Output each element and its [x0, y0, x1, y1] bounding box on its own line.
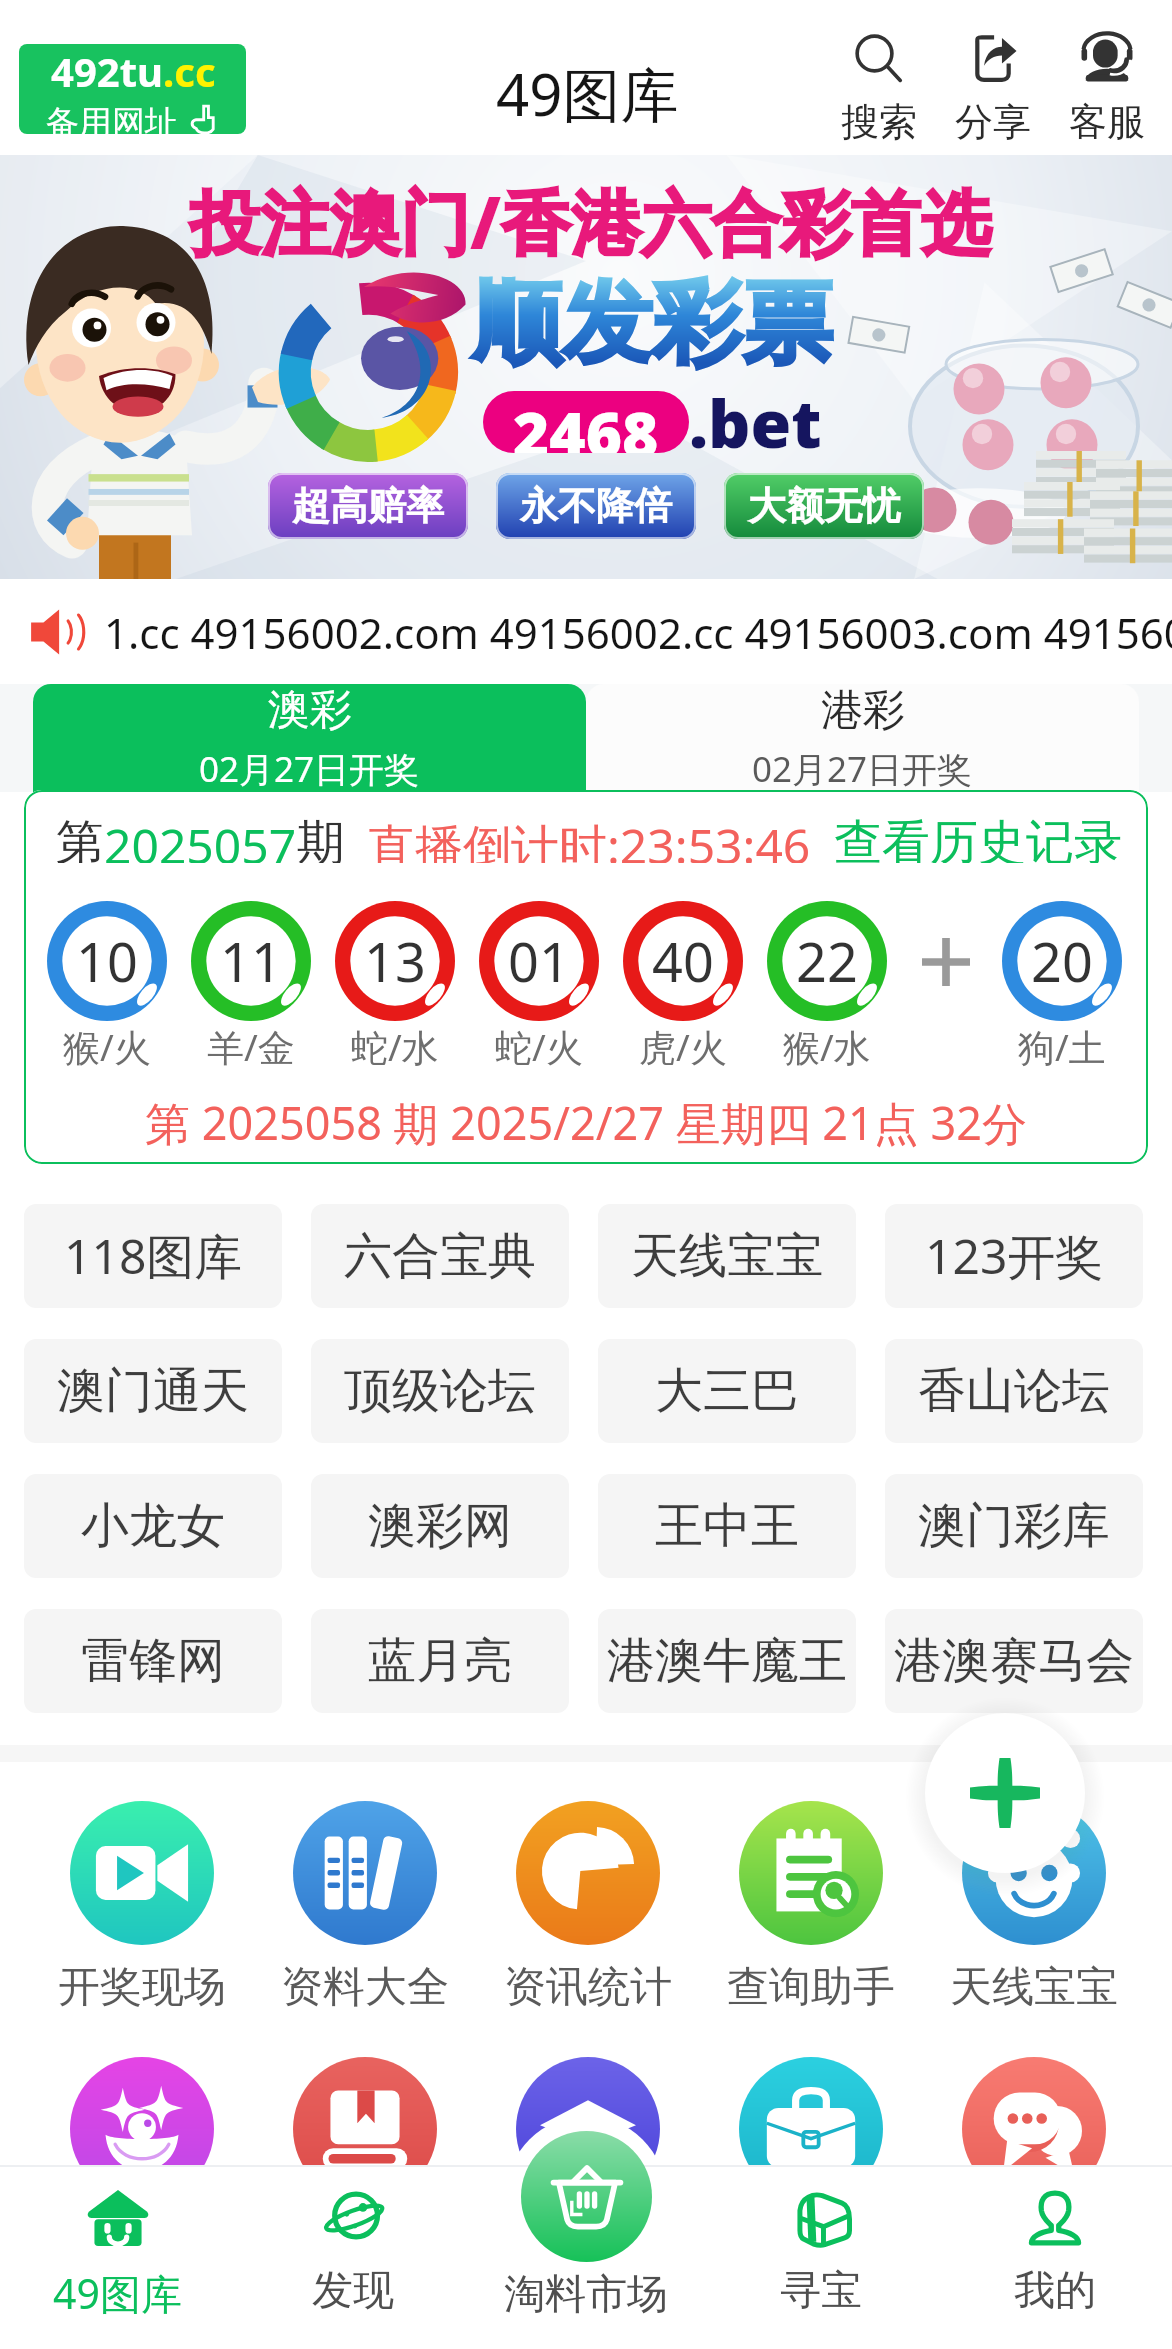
button[interactable]: 香山论坛 [885, 1339, 1143, 1443]
button[interactable]: 澳门彩库 [885, 1474, 1143, 1578]
staticText: 发现 [312, 2265, 394, 2317]
staticText: 澳彩网 [368, 1496, 512, 1556]
staticText: 123开奖 [925, 1223, 1104, 1289]
button[interactable]: 查询助手 [709, 1801, 913, 2014]
button[interactable] [709, 2057, 913, 2201]
button[interactable]: 澳彩 [33, 684, 586, 792]
staticText: 蛇/水 [351, 1021, 439, 1072]
staticText: 11 [220, 924, 282, 998]
staticText: 羊/金 [207, 1021, 295, 1072]
staticText: 寻宝 [780, 2265, 862, 2317]
button[interactable]: Add [925, 1713, 1085, 1873]
staticText: 澳门通天 [57, 1361, 249, 1421]
staticText: 澳门彩库 [918, 1496, 1110, 1556]
button[interactable]: 123开奖 [885, 1204, 1143, 1308]
button[interactable]: 118图库 [24, 1204, 282, 1308]
staticText: 20 [1031, 924, 1093, 998]
staticText: 开奖现场 [58, 1961, 226, 2014]
staticText: 49图库 [53, 2265, 182, 2321]
staticText: 第 2025058 期 2025/2/27 星期四 21点 32分 [24, 1092, 1148, 1153]
staticText: 永不降倍 [520, 482, 672, 530]
button[interactable]: 49图库 [0, 2165, 235, 2349]
button[interactable] [263, 2057, 467, 2201]
button[interactable]: 资料大全 [263, 1801, 467, 2014]
staticText: 直播倒计时:23:53:46 [367, 813, 811, 863]
staticText: 02月27日开奖 [199, 745, 420, 792]
button[interactable]: 天线宝宝 [932, 1801, 1136, 2014]
button[interactable]: 港澳赛马会 [885, 1609, 1143, 1713]
staticText: 猴/水 [783, 1021, 871, 1072]
staticText: 资讯统计 [504, 1961, 672, 2014]
staticText: 天线宝宝 [631, 1226, 823, 1286]
staticText: 天线宝宝 [950, 1961, 1118, 2014]
button[interactable] [932, 2057, 1136, 2201]
staticText: 客服 [1069, 98, 1145, 146]
button[interactable]: 港澳牛魔王 [598, 1609, 856, 1713]
staticText: 我的 [1014, 2265, 1096, 2317]
staticText: 港澳赛马会 [894, 1631, 1134, 1691]
staticText: 六合宝典 [344, 1226, 536, 1286]
staticText: 蓝月亮 [368, 1631, 512, 1691]
staticText: 虎/火 [639, 1021, 727, 1072]
button[interactable]: 王中王 [598, 1474, 856, 1578]
staticText: 澳彩 [268, 684, 352, 737]
button[interactable]: 港彩 [586, 684, 1139, 792]
staticText: 顺发彩票 [472, 267, 832, 380]
staticText: 查询助手 [727, 1961, 895, 2014]
staticText: 淘料市场 [502, 2269, 670, 2321]
staticText: 备用网址 [46, 102, 178, 134]
staticText: 资料大全 [281, 1961, 449, 2014]
staticText: 搜索 [841, 98, 917, 146]
staticText: 40 [652, 924, 714, 998]
staticText: 港澳牛魔王 [607, 1631, 847, 1691]
button[interactable]: 资讯统计 [486, 1801, 690, 2014]
button[interactable]: 六合宝典 [311, 1204, 569, 1308]
staticText: 投注澳门/香港六合彩首选 [190, 173, 991, 269]
staticText: 雷锋网 [81, 1631, 225, 1691]
button[interactable]: 天线宝宝 [598, 1204, 856, 1308]
staticText: 第 [56, 813, 104, 863]
staticText: 02月27日开奖 [752, 745, 973, 792]
button[interactable]: 雷锋网 [24, 1609, 282, 1713]
button[interactable]: 寻宝 [704, 2165, 938, 2349]
staticText: 狗/土 [1018, 1021, 1106, 1072]
button[interactable]: 客服 [1050, 30, 1164, 146]
button[interactable]: 澳门通天 [24, 1339, 282, 1443]
staticText: 超高赔率 [292, 482, 444, 530]
staticText: 2025057 [104, 813, 297, 863]
staticText: 22 [796, 924, 858, 998]
staticText: 期 [297, 813, 345, 863]
button[interactable]: 澳彩网 [311, 1474, 569, 1578]
button[interactable] [521, 2131, 652, 2262]
button[interactable] [486, 2057, 690, 2201]
staticText: 118图库 [64, 1223, 243, 1289]
button[interactable]: 搜索 [822, 30, 936, 146]
button[interactable]: 投注澳门/香港六合彩首选 [0, 155, 1172, 579]
staticText: 港彩 [821, 684, 905, 737]
button[interactable]: 小龙女 [24, 1474, 282, 1578]
button[interactable]: 492tu [19, 44, 246, 134]
staticText: 小龙女 [81, 1496, 225, 1556]
staticText: .bet [689, 377, 822, 467]
button[interactable]: 分享 [936, 30, 1050, 146]
button[interactable]: 开奖现场 [40, 1801, 244, 2014]
button[interactable]: 我的 [938, 2165, 1172, 2349]
button[interactable]: 顶级论坛 [311, 1339, 569, 1443]
staticText: 分享 [955, 98, 1031, 146]
staticText: 13 [364, 924, 426, 998]
staticText: .cc [163, 44, 216, 98]
staticText: 猴/火 [63, 1021, 151, 1072]
staticText: 香山论坛 [918, 1361, 1110, 1421]
staticText: 10 [76, 924, 138, 998]
staticText: 蛇/火 [495, 1021, 583, 1072]
button[interactable]: 大三巴 [598, 1339, 856, 1443]
button[interactable]: 查看历史记录 [834, 813, 1122, 863]
button[interactable] [40, 2057, 244, 2201]
staticText: 王中王 [655, 1496, 799, 1556]
staticText: 顶级论坛 [344, 1361, 536, 1421]
button[interactable]: 发现 [235, 2165, 470, 2349]
staticText: 大额无忧 [748, 482, 900, 530]
button[interactable]: 蓝月亮 [311, 1609, 569, 1713]
staticText: 01 [508, 924, 570, 998]
staticText: 2468 [513, 391, 659, 453]
